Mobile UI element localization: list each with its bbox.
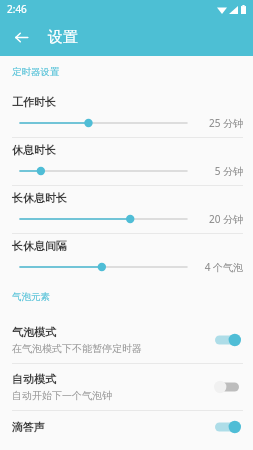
button[interactable]: 滴答声	[0, 411, 253, 443]
staticText: 4 个气泡	[195, 260, 243, 274]
button[interactable]: 长休息时长	[0, 186, 253, 233]
staticText: 自动模式	[12, 372, 56, 386]
other: Signal	[229, 6, 238, 14]
staticText: 设置	[48, 28, 78, 47]
other: Wifi	[217, 6, 227, 14]
staticText: 气泡元素	[12, 291, 50, 303]
staticText: 气泡模式	[12, 325, 56, 339]
staticText: 长休息时长	[12, 191, 67, 205]
staticText: 20 分钟	[195, 212, 243, 226]
button[interactable]: 工作时长	[0, 90, 253, 137]
button[interactable]: 气泡模式	[0, 317, 253, 363]
button[interactable]: Off	[213, 379, 243, 395]
button[interactable]: 长休息间隔	[0, 234, 253, 281]
staticText: 自动开始下一个气泡钟	[12, 389, 112, 402]
button[interactable]: 休息时长	[0, 138, 253, 185]
button[interactable]: On	[213, 419, 243, 435]
button[interactable]: On	[213, 332, 243, 348]
staticText: 2:46	[7, 2, 27, 16]
staticText: 定时器设置	[12, 66, 60, 78]
button[interactable]: 自动模式	[0, 364, 253, 410]
staticText: 长休息间隔	[12, 239, 67, 253]
staticText: 在气泡模式下不能暂停定时器	[12, 342, 142, 355]
staticText: 工作时长	[12, 95, 56, 109]
other: Battery	[241, 5, 246, 14]
staticText: 25 分钟	[195, 116, 243, 130]
staticText: 滴答声	[12, 420, 45, 434]
staticText: 休息时长	[12, 143, 56, 157]
button[interactable]: Back	[6, 22, 36, 52]
staticText: 5 分钟	[195, 164, 243, 178]
